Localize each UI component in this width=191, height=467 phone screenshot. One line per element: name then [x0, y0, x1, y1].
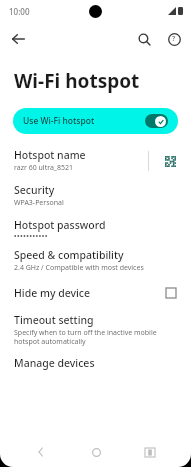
button[interactable]: Home: [83, 439, 109, 465]
button[interactable]: Hide my device checkbox: [161, 283, 181, 303]
button[interactable]: Speed & compatibility: [0, 248, 191, 273]
button[interactable]: Timeout setting: [0, 313, 191, 346]
button[interactable]: Share hotspot QR code: [159, 150, 181, 172]
staticText: 10:00: [9, 6, 30, 17]
button[interactable]: Help: [161, 26, 187, 52]
staticText: Timeout setting: [14, 313, 94, 327]
staticText: Hotspot name: [14, 148, 86, 162]
button[interactable]: Back: [28, 439, 54, 465]
button[interactable]: Search: [131, 26, 157, 52]
staticText: Manage devices: [14, 356, 95, 370]
button[interactable]: Recent apps: [137, 439, 163, 465]
staticText: Wi-Fi hotspot: [14, 68, 140, 94]
staticText: Hide my device: [14, 286, 91, 300]
button[interactable]: Hide my device: [0, 283, 191, 303]
staticText: WPA3-Personal: [14, 198, 64, 208]
staticText: 2.4 GHz / Compatible with most devices: [14, 263, 144, 273]
button[interactable]: Security: [0, 183, 191, 208]
button[interactable]: Back: [5, 26, 31, 52]
staticText: Hotspot password: [14, 218, 106, 232]
staticText: Specify when to turn off the inactive mo…: [14, 328, 181, 346]
staticText: ?: [172, 34, 176, 44]
button[interactable]: Use Wi-Fi hotspot: [13, 108, 178, 134]
staticText: Speed & compatibility: [14, 248, 124, 262]
staticText: Use Wi-Fi hotspot: [23, 115, 145, 127]
button[interactable]: Hotspot name: [0, 148, 191, 173]
button[interactable]: Hotspot password: [0, 218, 191, 238]
button[interactable]: Manage devices: [0, 356, 191, 370]
staticText: Security: [14, 183, 55, 197]
staticText: razr 60 ultra_8521: [14, 163, 73, 173]
